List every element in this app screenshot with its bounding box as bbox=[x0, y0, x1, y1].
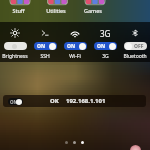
staticText: 3G bbox=[102, 53, 109, 60]
staticText: OFF bbox=[134, 43, 144, 50]
staticText: Brightness bbox=[2, 53, 28, 60]
button[interactable]: Brightness bbox=[0, 22, 30, 62]
staticText: Wi-Fi bbox=[69, 53, 81, 60]
button[interactable]: On bbox=[64, 42, 87, 50]
button[interactable]: On bbox=[94, 42, 117, 50]
button[interactable]: App bbox=[130, 145, 141, 150]
button[interactable]: Off bbox=[120, 22, 150, 62]
staticText: ON bbox=[67, 43, 76, 50]
button[interactable]: Brightness bbox=[4, 42, 27, 50]
staticText: ON bbox=[10, 99, 18, 105]
staticText: Utilities bbox=[46, 7, 66, 14]
button[interactable]: Off bbox=[124, 42, 147, 50]
button[interactable]: Utilities bbox=[37, 0, 74, 13]
button[interactable]: Connected bbox=[3, 95, 146, 107]
button[interactable]: On bbox=[30, 22, 60, 62]
staticText: Stuff bbox=[12, 7, 25, 14]
staticText: Games bbox=[84, 7, 102, 14]
staticText: OK bbox=[50, 97, 59, 105]
button[interactable]: On bbox=[60, 22, 90, 62]
staticText: 192.168.1.101 bbox=[66, 97, 106, 105]
button[interactable]: 3G bbox=[90, 22, 120, 62]
button[interactable]: On bbox=[34, 42, 57, 50]
staticText: 3G bbox=[100, 28, 111, 39]
staticText: ON bbox=[97, 43, 106, 50]
button[interactable]: Games bbox=[74, 0, 112, 13]
button[interactable]: Connected bbox=[8, 98, 23, 105]
staticText: SSH bbox=[40, 53, 50, 60]
button[interactable]: Stuff bbox=[0, 0, 37, 13]
staticText: Bluetooth bbox=[123, 53, 147, 60]
staticText: ON bbox=[37, 43, 46, 50]
